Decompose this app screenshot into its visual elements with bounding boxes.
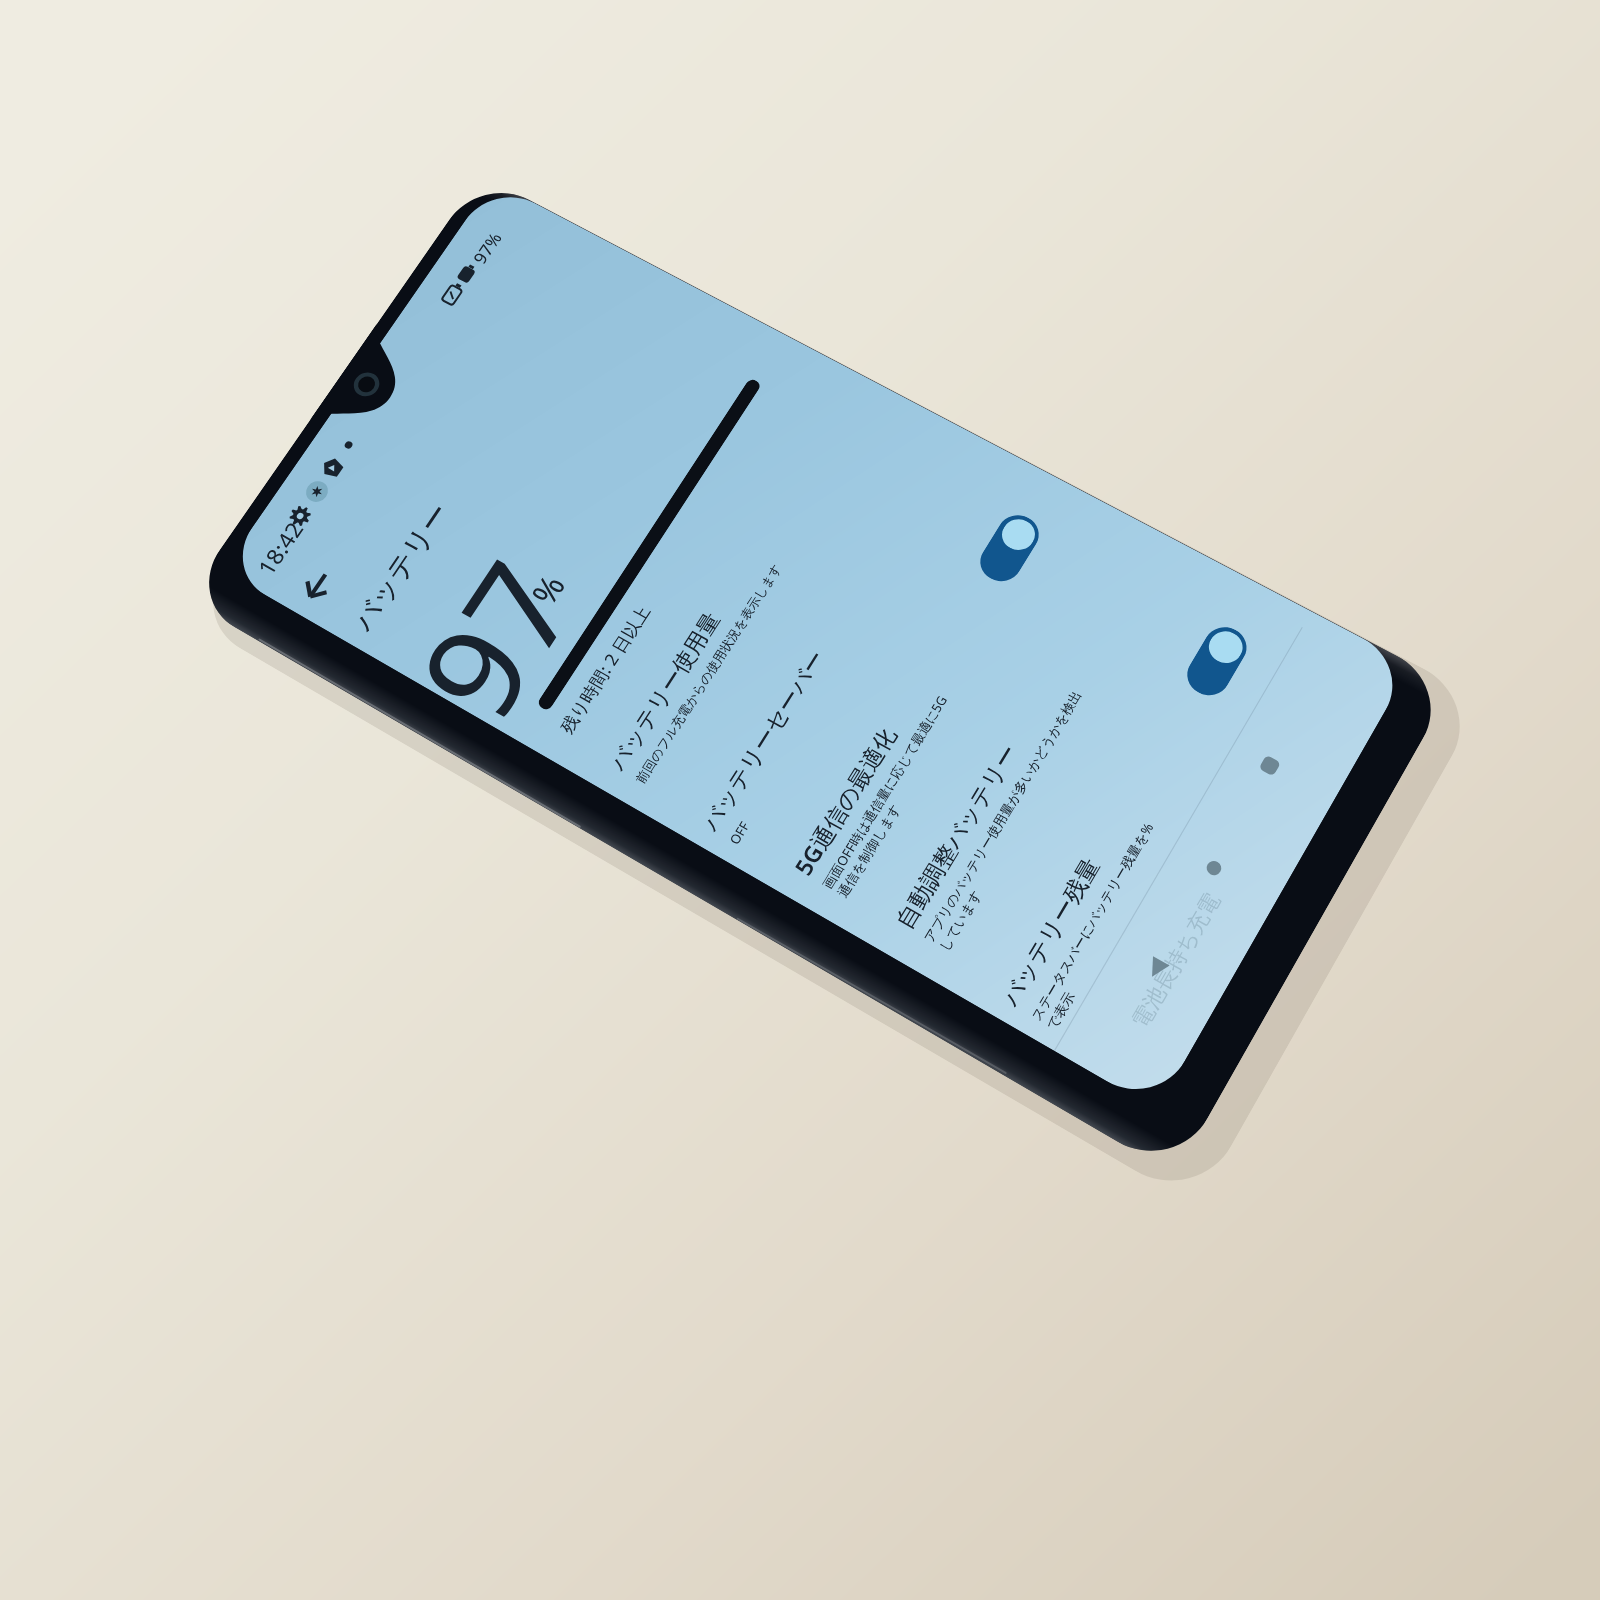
button[interactable]: 5G通信の最適化 bbox=[787, 531, 1055, 900]
staticText: 前回のフル充電からの使用状況を表示します bbox=[632, 561, 785, 786]
button[interactable]: Home bbox=[1183, 838, 1245, 898]
staticText: 電池長持ち充電 bbox=[1126, 888, 1226, 1033]
staticText: 自動調整バッテリー bbox=[890, 739, 1025, 934]
staticText: バッテリー使用量 bbox=[603, 607, 727, 776]
button[interactable]: バッテリーセーバー bbox=[696, 492, 948, 848]
staticText: 18:42 bbox=[250, 516, 310, 580]
button[interactable]: Toggle bbox=[1179, 620, 1254, 703]
button[interactable]: Recent apps bbox=[1239, 736, 1301, 795]
staticText: バッテリー bbox=[345, 498, 458, 637]
staticText: OFF bbox=[725, 818, 754, 848]
button[interactable]: バッテリー使用量 bbox=[603, 437, 854, 786]
button[interactable]: Toggle bbox=[973, 508, 1046, 588]
staticText: 5G通信の最適化 bbox=[787, 721, 902, 880]
staticText: アプリのバッテリー使用量が多いかどうかを検出 しています bbox=[920, 688, 1101, 954]
staticText: 97% bbox=[468, 229, 507, 268]
staticText: 画面OFF時は通信量に応じて最適に5G 通信を制御します bbox=[818, 692, 966, 900]
button[interactable]: 自動調整バッテリー bbox=[890, 581, 1155, 954]
staticText: ステータスバーにバッテリー残量を% で表示 bbox=[1026, 819, 1173, 1033]
staticText: 97 bbox=[375, 532, 614, 748]
staticText: バッテリー残量 bbox=[995, 853, 1107, 1012]
button[interactable]: バッテリー残量 bbox=[995, 652, 1262, 1033]
staticText: % bbox=[521, 566, 576, 613]
button[interactable]: Back bbox=[1125, 938, 1188, 1000]
staticText: バッテリーセーバー bbox=[696, 645, 832, 836]
staticText: 残り時間: 2 日以上 bbox=[554, 602, 656, 737]
button[interactable]: Back bbox=[285, 556, 350, 616]
